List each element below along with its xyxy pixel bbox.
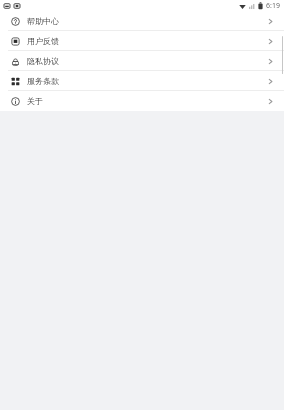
- button[interactable]: 关于: [0, 91, 284, 111]
- staticText: 关于: [27, 96, 43, 106]
- staticText: 6:19: [266, 1, 280, 11]
- staticText: 用户反馈: [27, 36, 59, 46]
- button[interactable]: 隐私协议: [0, 51, 284, 71]
- button[interactable]: 服务条款: [0, 71, 284, 91]
- button[interactable]: 用户反馈: [0, 31, 284, 51]
- button[interactable]: 帮助中心: [0, 11, 284, 31]
- staticText: 帮助中心: [27, 16, 59, 26]
- staticText: 隐私协议: [27, 56, 59, 66]
- staticText: 服务条款: [27, 76, 59, 86]
